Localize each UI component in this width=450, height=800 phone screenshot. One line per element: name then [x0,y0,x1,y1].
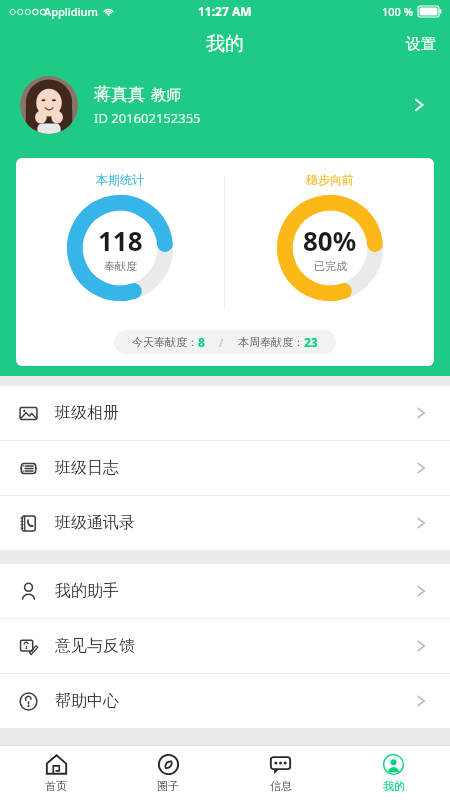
staticText: 80% [303,223,357,258]
staticText: 设置 [406,35,436,54]
staticText: 本周奉献度： [238,335,304,349]
staticText: 圈子 [157,779,179,793]
button[interactable]: 我的 [337,746,450,800]
other: Profile detail [408,94,430,116]
staticText: / [219,335,224,350]
staticText: 教师 [151,86,181,105]
button[interactable]: 班级相册 [0,386,450,440]
staticText: 已完成 [314,259,347,273]
staticText: ID 201602152355 [94,109,201,127]
staticText: 100 % [382,4,414,19]
button[interactable]: 圈子 [112,746,224,800]
button[interactable]: 班级日志 [0,441,450,495]
button[interactable]: 帮助中心 [0,674,450,728]
staticText: 我的 [383,779,405,793]
staticText: 信息 [270,779,292,793]
button[interactable]: 我的助手 [0,564,450,618]
staticText: 蒋真真 [94,84,145,105]
staticText: Applidium [44,4,98,19]
staticText: 首页 [45,779,67,793]
staticText: 意见与反馈 [55,636,412,656]
button[interactable]: 蒋真真 [0,66,450,144]
staticText: 今天奉献度： [132,335,198,349]
button[interactable]: 首页 [0,746,112,800]
staticText: 班级通讯录 [55,513,412,533]
staticText: 8 [198,334,205,350]
staticText: 23 [304,334,318,350]
button[interactable]: 班级通讯录 [0,496,450,550]
staticText: 我的 [206,32,244,56]
staticText: 帮助中心 [55,691,412,711]
staticText: 班级相册 [55,403,412,423]
staticText: 118 [98,223,143,258]
staticText: 班级日志 [55,458,412,478]
staticText: 11:27 AM [198,3,252,19]
staticText: 本期统计 [96,172,144,187]
staticText: 我的助手 [55,581,412,601]
button[interactable]: 信息 [224,746,337,800]
staticText: 稳步向前 [306,172,354,187]
button[interactable]: 意见与反馈 [0,619,450,673]
staticText: 奉献度 [104,259,137,273]
button[interactable]: 设置 [392,27,450,62]
